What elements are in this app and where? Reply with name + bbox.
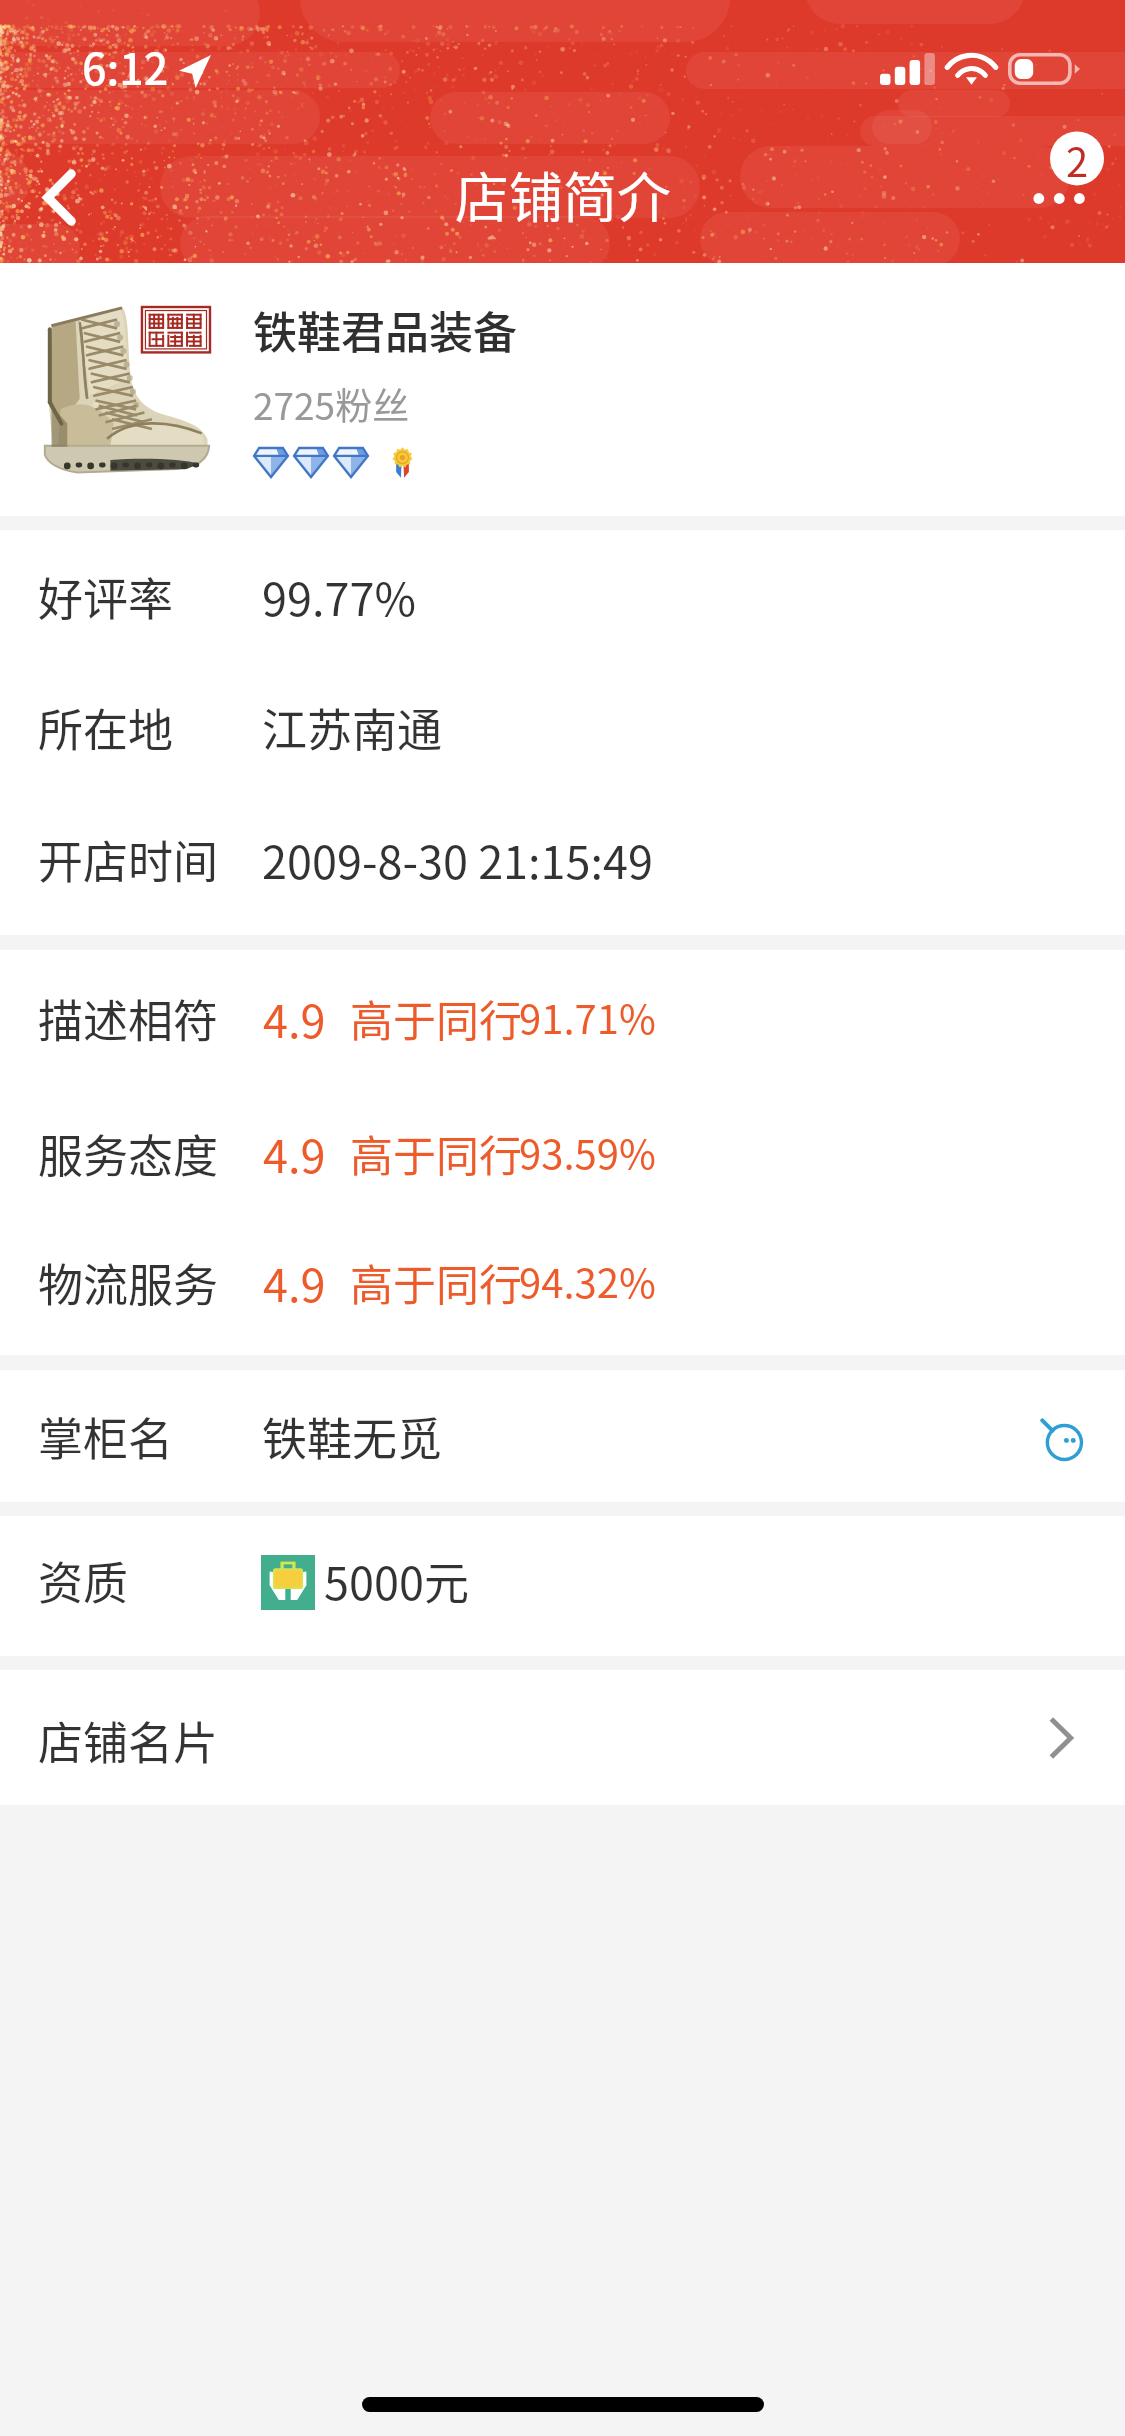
staticText: 好评率: [38, 564, 174, 629]
button[interactable]: 描述相符: [0, 940, 1125, 1072]
staticText: 资质: [38, 1548, 129, 1613]
staticText: 江苏南通: [262, 695, 443, 760]
staticText: 6:12: [82, 35, 169, 97]
staticText: 99.77%: [262, 564, 416, 629]
staticText: 2: [1066, 131, 1089, 185]
staticText: 2725粉丝: [253, 377, 410, 431]
button[interactable]: Back: [14, 152, 104, 242]
button[interactable]: More options: [997, 132, 1117, 263]
staticText: 高于同行: [350, 1251, 522, 1313]
staticText: 服务态度: [38, 1121, 219, 1186]
button[interactable]: 物流服务: [0, 1204, 1125, 1336]
staticText: 描述相符: [38, 986, 219, 1051]
button[interactable]: 掌柜名: [0, 1370, 1125, 1502]
staticText: 4.9: [263, 1121, 326, 1186]
staticText: 店铺名片: [38, 1708, 219, 1773]
staticText: 店铺简介: [455, 155, 671, 233]
staticText: 91.71%: [519, 988, 656, 1046]
staticText: 铁鞋君品装备: [253, 298, 517, 362]
button[interactable]: 所在地: [0, 649, 1125, 781]
staticText: 物流服务: [38, 1250, 219, 1315]
staticText: 94.32%: [519, 1252, 656, 1310]
staticText: 开店时间: [38, 827, 219, 892]
button[interactable]: Chat with seller: [1024, 1398, 1100, 1474]
staticText: 93.59%: [519, 1123, 656, 1181]
button[interactable]: 好评率: [0, 518, 1125, 650]
button[interactable]: 铁鞋君品装备: [0, 263, 1125, 516]
button[interactable]: 店铺名片: [0, 1670, 1125, 1805]
staticText: 5000元: [324, 1548, 469, 1613]
button[interactable]: 开店时间: [0, 781, 1125, 913]
button[interactable]: 资质: [0, 1516, 1125, 1656]
staticText: 高于同行: [350, 1122, 522, 1184]
staticText: 4.9: [263, 986, 326, 1051]
button[interactable]: 服务态度: [0, 1075, 1125, 1207]
staticText: 高于同行: [350, 987, 522, 1049]
staticText: 掌柜名: [38, 1404, 174, 1469]
staticText: 铁鞋无觅: [262, 1404, 443, 1469]
staticText: 所在地: [38, 695, 174, 760]
staticText: 2009-8-30 21:15:49: [262, 827, 654, 892]
button[interactable]: 掌柜名: [0, 1358, 1125, 1490]
staticText: 4.9: [263, 1250, 326, 1315]
